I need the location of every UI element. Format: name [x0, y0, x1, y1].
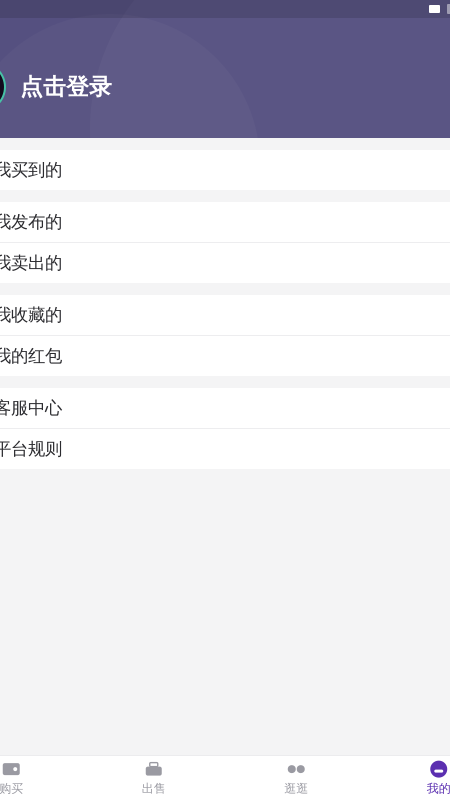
- staticText: 出售: [142, 781, 166, 796]
- button[interactable]: 我的: [367, 756, 450, 800]
- staticText: 客服中心: [0, 397, 62, 419]
- staticText: 平台规则: [0, 438, 62, 460]
- button[interactable]: 我卖出的: [0, 243, 450, 283]
- button[interactable]: 逛逛: [225, 756, 367, 800]
- button[interactable]: 购买: [0, 756, 82, 800]
- button[interactable]: 出售: [82, 756, 225, 800]
- button[interactable]: 点击登录: [0, 62, 112, 112]
- button[interactable]: 我收藏的: [0, 295, 450, 335]
- staticText: 我买到的: [0, 159, 62, 181]
- button[interactable]: 我买到的: [0, 150, 450, 190]
- staticText: 我的红包: [0, 345, 62, 367]
- button[interactable]: 客服中心: [0, 388, 450, 428]
- button[interactable]: 我的红包: [0, 336, 450, 376]
- staticText: 逛逛: [284, 781, 308, 796]
- staticText: 我收藏的: [0, 304, 62, 326]
- button[interactable]: 我发布的: [0, 202, 450, 242]
- staticText: 我卖出的: [0, 252, 62, 274]
- staticText: 点击登录: [20, 73, 112, 101]
- staticText: 我的: [427, 781, 450, 796]
- staticText: 购买: [0, 781, 23, 796]
- button[interactable]: 平台规则: [0, 429, 450, 469]
- staticText: 我发布的: [0, 211, 62, 233]
